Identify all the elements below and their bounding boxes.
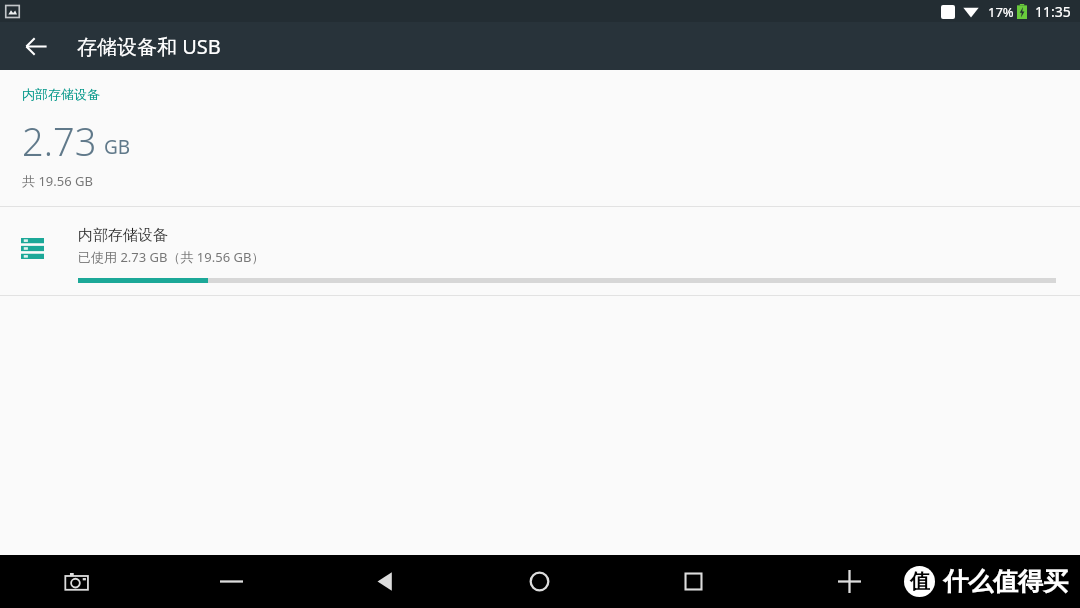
staticText: 什么值得买 [943, 566, 1068, 597]
staticText: 内部存储设备 [78, 226, 168, 245]
button[interactable]: Recent apps [660, 555, 726, 608]
button[interactable]: Back [352, 555, 418, 608]
staticText: 存储设备和 USB [77, 33, 221, 60]
staticText: 已使用 2.73 GB（共 19.56 GB） [78, 248, 265, 266]
staticText: 值 [910, 569, 930, 594]
staticText: 17% [988, 3, 1014, 21]
staticText: 共 19.56 GB [22, 172, 93, 190]
staticText: 11:35 [1035, 2, 1071, 21]
staticText: 内部存储设备 [22, 86, 100, 102]
button[interactable]: Home [506, 555, 572, 608]
button[interactable]: Screenshot [44, 555, 110, 608]
staticText: GB [104, 134, 131, 160]
staticText: 2.73 [22, 115, 97, 167]
button[interactable]: Back [13, 23, 59, 69]
button[interactable]: Volume up [816, 555, 882, 608]
button[interactable]: Volume down [198, 555, 264, 608]
button[interactable]: 内部存储设备 [0, 207, 1080, 295]
